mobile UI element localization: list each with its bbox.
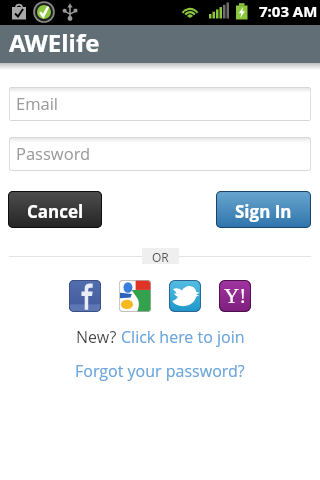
staticText: New? [76, 326, 121, 348]
staticText: Email [16, 92, 59, 114]
button[interactable]: Sign in with Facebook [69, 280, 101, 312]
button[interactable]: Sign In [216, 191, 311, 228]
staticText: Y! [224, 284, 247, 307]
button[interactable]: Sign in with Twitter [169, 280, 201, 312]
button[interactable]: Password [9, 137, 311, 171]
button[interactable]: Sign in with Yahoo [219, 280, 251, 312]
staticText: Password [16, 142, 91, 164]
button[interactable]: Sign in with Google [119, 280, 151, 312]
button[interactable]: Forgot your password? [75, 360, 245, 382]
staticText: Sign In [235, 200, 292, 223]
staticText: Cancel [27, 200, 84, 223]
staticText: Forgot your password? [75, 360, 245, 382]
button[interactable]: Cancel [8, 191, 102, 228]
staticText: OR [152, 249, 169, 265]
button[interactable]: Click here to join [121, 326, 245, 348]
staticText: 7:03 AM [259, 1, 318, 21]
button[interactable]: Email [9, 87, 311, 121]
staticText: Click here to join [121, 326, 245, 348]
staticText: AWElife [9, 26, 100, 59]
